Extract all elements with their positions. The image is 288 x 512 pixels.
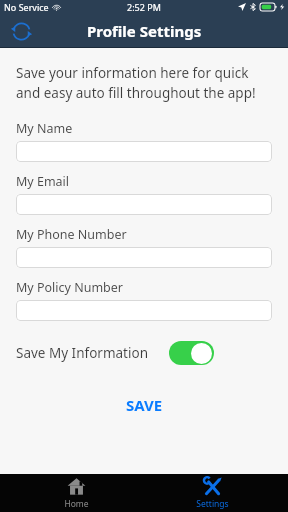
button[interactable] <box>16 141 272 162</box>
staticText: No Service <box>4 1 49 13</box>
button[interactable]: Refresh <box>6 16 36 46</box>
staticText: My Email <box>16 173 70 190</box>
staticText: Profile Settings <box>87 21 202 41</box>
staticText: Save your information here for quick and… <box>16 64 262 102</box>
button[interactable]: SAVE <box>108 389 181 421</box>
staticText: My Phone Number <box>16 226 127 243</box>
button[interactable] <box>16 247 272 268</box>
button[interactable]: Settings <box>152 474 272 512</box>
staticText: Settings <box>196 498 229 510</box>
button[interactable] <box>16 194 272 215</box>
staticText: SAVE <box>126 395 163 415</box>
button[interactable] <box>16 300 272 321</box>
staticText: Home <box>64 498 89 510</box>
staticText: My Policy Number <box>16 279 123 296</box>
button[interactable]: Save My Information toggle <box>169 341 214 365</box>
button[interactable]: Home <box>16 474 136 512</box>
staticText: My Name <box>16 120 73 137</box>
staticText: Save My Information <box>16 344 148 362</box>
staticText: 2:52 PM <box>127 1 161 13</box>
